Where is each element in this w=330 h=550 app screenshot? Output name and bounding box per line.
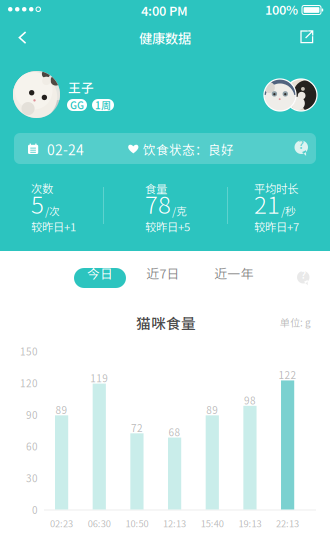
staticText: ? <box>301 266 306 282</box>
staticText: 今日 <box>87 264 113 282</box>
staticText: /克 <box>172 203 187 218</box>
button[interactable]: Help <box>288 133 316 164</box>
staticText: 平均时长 <box>254 180 298 196</box>
staticText: 150 <box>20 344 38 358</box>
staticText: 19:13 <box>238 516 261 530</box>
staticText: 12:13 <box>163 516 186 530</box>
staticText: 02-24 <box>47 139 84 159</box>
staticText: 30 <box>26 471 38 485</box>
staticText: 近7日 <box>146 264 179 282</box>
staticText: 单位: g <box>280 315 311 329</box>
staticText: ? <box>298 135 304 152</box>
staticText: 食量 <box>145 180 167 196</box>
staticText: 119 <box>90 371 108 385</box>
staticText: 22:13 <box>276 516 299 530</box>
staticText: 98 <box>244 393 256 407</box>
staticText: 02:23 <box>50 516 73 530</box>
staticText: 78 <box>145 186 171 221</box>
staticText: 4:00 PM <box>141 1 188 19</box>
staticText: 较昨日+5 <box>145 218 190 234</box>
staticText: 89 <box>56 402 68 417</box>
staticText: 较昨日+1 <box>31 218 76 234</box>
staticText: 90 <box>26 407 38 422</box>
staticText: 06:30 <box>88 516 111 530</box>
staticText: 15:40 <box>201 516 224 530</box>
staticText: 较昨日+7 <box>254 218 299 234</box>
staticText: 120 <box>20 375 38 390</box>
staticText: 100% <box>265 0 298 18</box>
staticText: 122 <box>279 367 297 382</box>
button[interactable]: 近一年 <box>210 268 258 288</box>
staticText: /次 <box>45 203 60 218</box>
staticText: 21 <box>254 186 280 221</box>
staticText: 68 <box>169 425 181 439</box>
staticText: 72 <box>131 420 143 435</box>
button[interactable]: Share <box>286 19 326 55</box>
staticText: 89 <box>206 402 218 417</box>
staticText: 10:50 <box>125 516 148 530</box>
button[interactable]: Chart help <box>290 264 317 292</box>
staticText: 王子 <box>68 78 94 96</box>
button[interactable]: Back <box>4 19 44 55</box>
staticText: 健康数据 <box>139 28 191 47</box>
staticText: 近一年 <box>214 264 253 282</box>
staticText: 饮食状态：良好 <box>143 140 234 158</box>
staticText: 5 <box>31 186 44 221</box>
button[interactable]: 近7日 <box>139 268 187 288</box>
staticText: 0 <box>32 502 38 517</box>
button[interactable]: 今日 <box>74 268 126 288</box>
staticText: 60 <box>26 439 38 453</box>
staticText: /秒 <box>281 203 296 218</box>
staticText: GG <box>70 98 84 112</box>
staticText: 次数 <box>31 180 53 196</box>
staticText: 1周 <box>95 98 111 112</box>
staticText: 猫咪食量 <box>136 312 196 333</box>
